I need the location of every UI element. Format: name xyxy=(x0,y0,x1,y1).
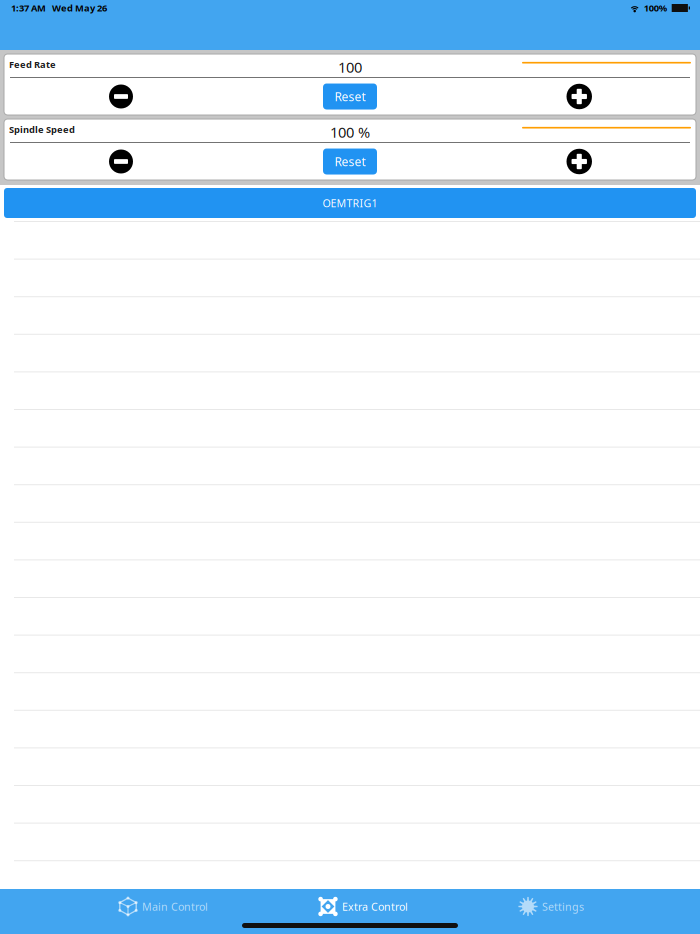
button[interactable]: Settings xyxy=(515,889,587,924)
button[interactable]: Increase Spindle Speed xyxy=(566,149,592,174)
button[interactable]: OEMTRIG1 xyxy=(4,188,696,218)
staticText: Feed Rate xyxy=(9,58,56,71)
staticText: Extra Control xyxy=(342,899,408,914)
staticText: Main Control xyxy=(142,899,208,914)
staticText: 100 xyxy=(338,57,362,77)
button[interactable]: Decrease Spindle Speed xyxy=(109,149,133,173)
staticText: Spindle Speed xyxy=(9,123,75,136)
button[interactable]: Extra Control xyxy=(315,889,411,924)
staticText: 100% xyxy=(644,2,667,14)
staticText: 1:37 AM Wed May 26 xyxy=(11,2,107,14)
staticText: Reset xyxy=(334,153,365,169)
button[interactable]: Increase Feed Rate xyxy=(566,84,592,109)
staticText: OEMTRIG1 xyxy=(322,196,377,210)
button[interactable]: Reset xyxy=(323,148,377,174)
staticText: Settings xyxy=(542,899,584,914)
staticText: 100 % xyxy=(330,122,370,142)
button[interactable]: Main Control xyxy=(115,889,211,924)
button[interactable]: Decrease Feed Rate xyxy=(109,84,133,108)
staticText: Reset xyxy=(334,88,365,104)
button[interactable]: Reset xyxy=(323,83,377,109)
